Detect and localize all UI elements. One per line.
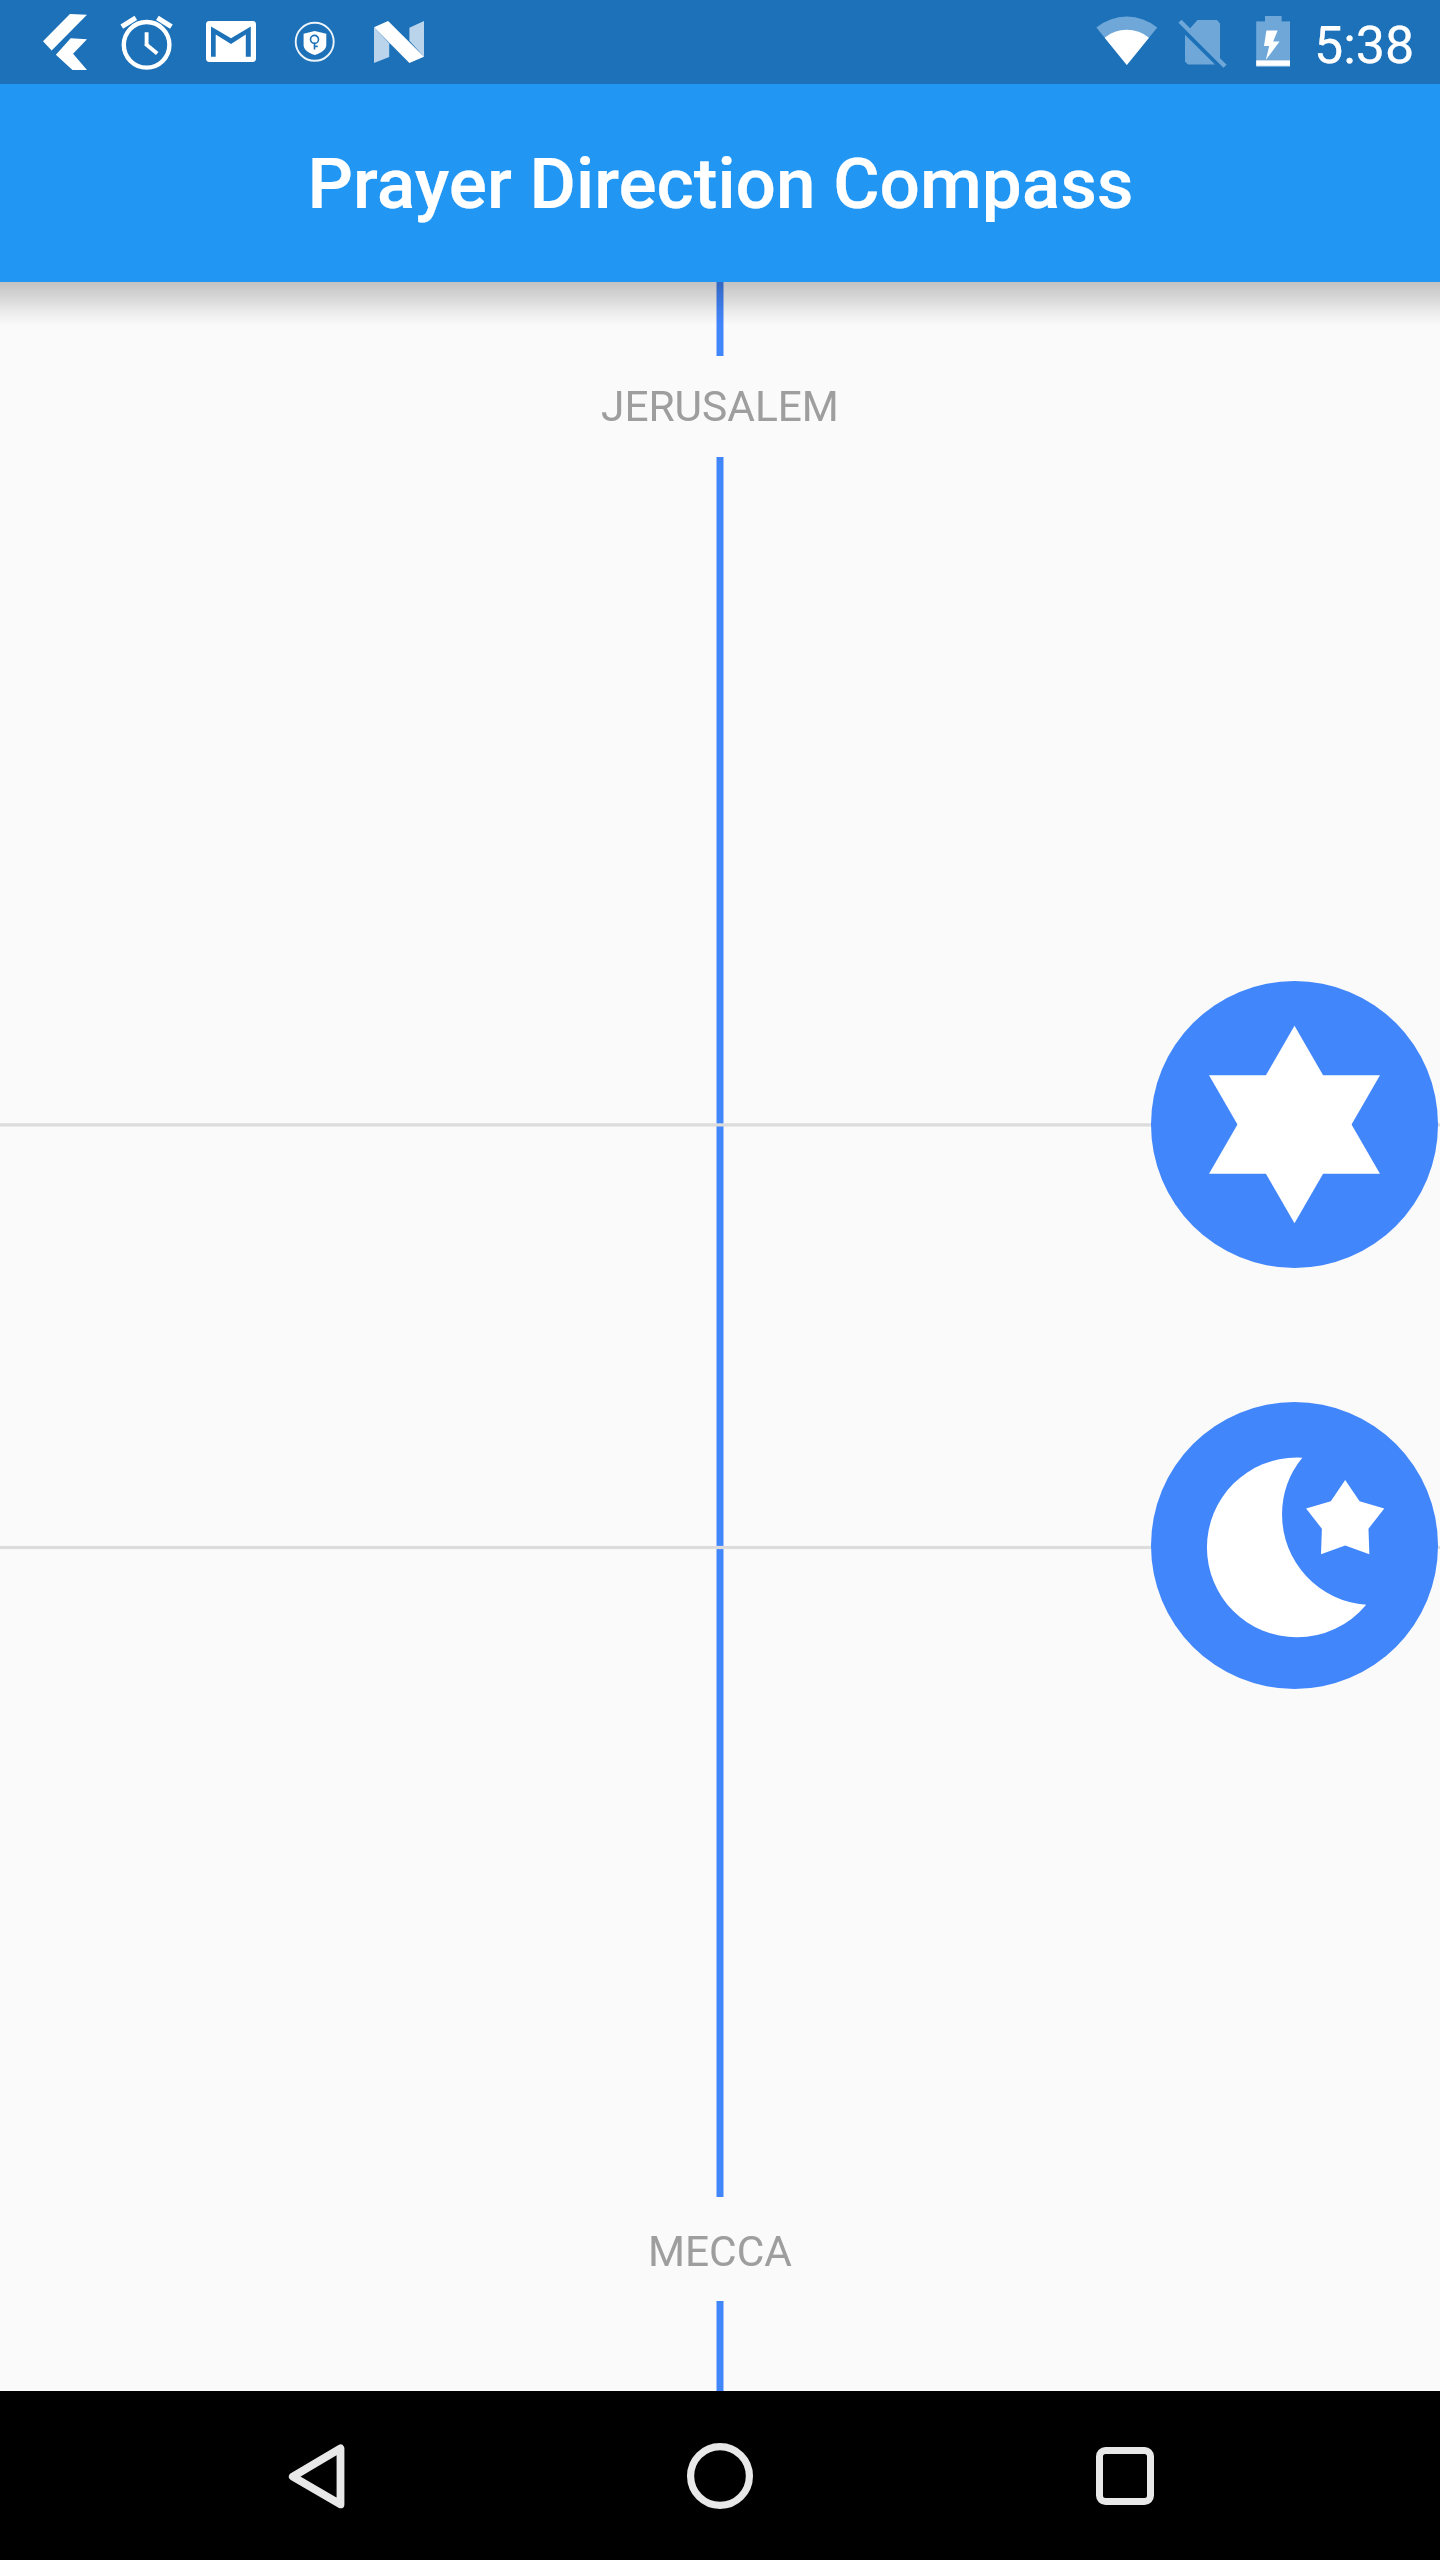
button[interactable]: Home <box>630 2391 810 2560</box>
staticText: MECCA <box>648 2227 792 2277</box>
staticText: JERUSALEM <box>601 382 839 432</box>
button[interactable]: Back <box>226 2391 406 2560</box>
button[interactable]: Prayer Direction Compass <box>0 84 1440 282</box>
button[interactable]: Mecca direction <box>1151 1402 1438 1689</box>
button[interactable]: Recent apps <box>1035 2391 1215 2560</box>
staticText: 5:38 <box>1314 15 1415 76</box>
button[interactable]: Jerusalem direction <box>1151 981 1438 1268</box>
staticText: Prayer Direction Compass <box>307 142 1134 225</box>
